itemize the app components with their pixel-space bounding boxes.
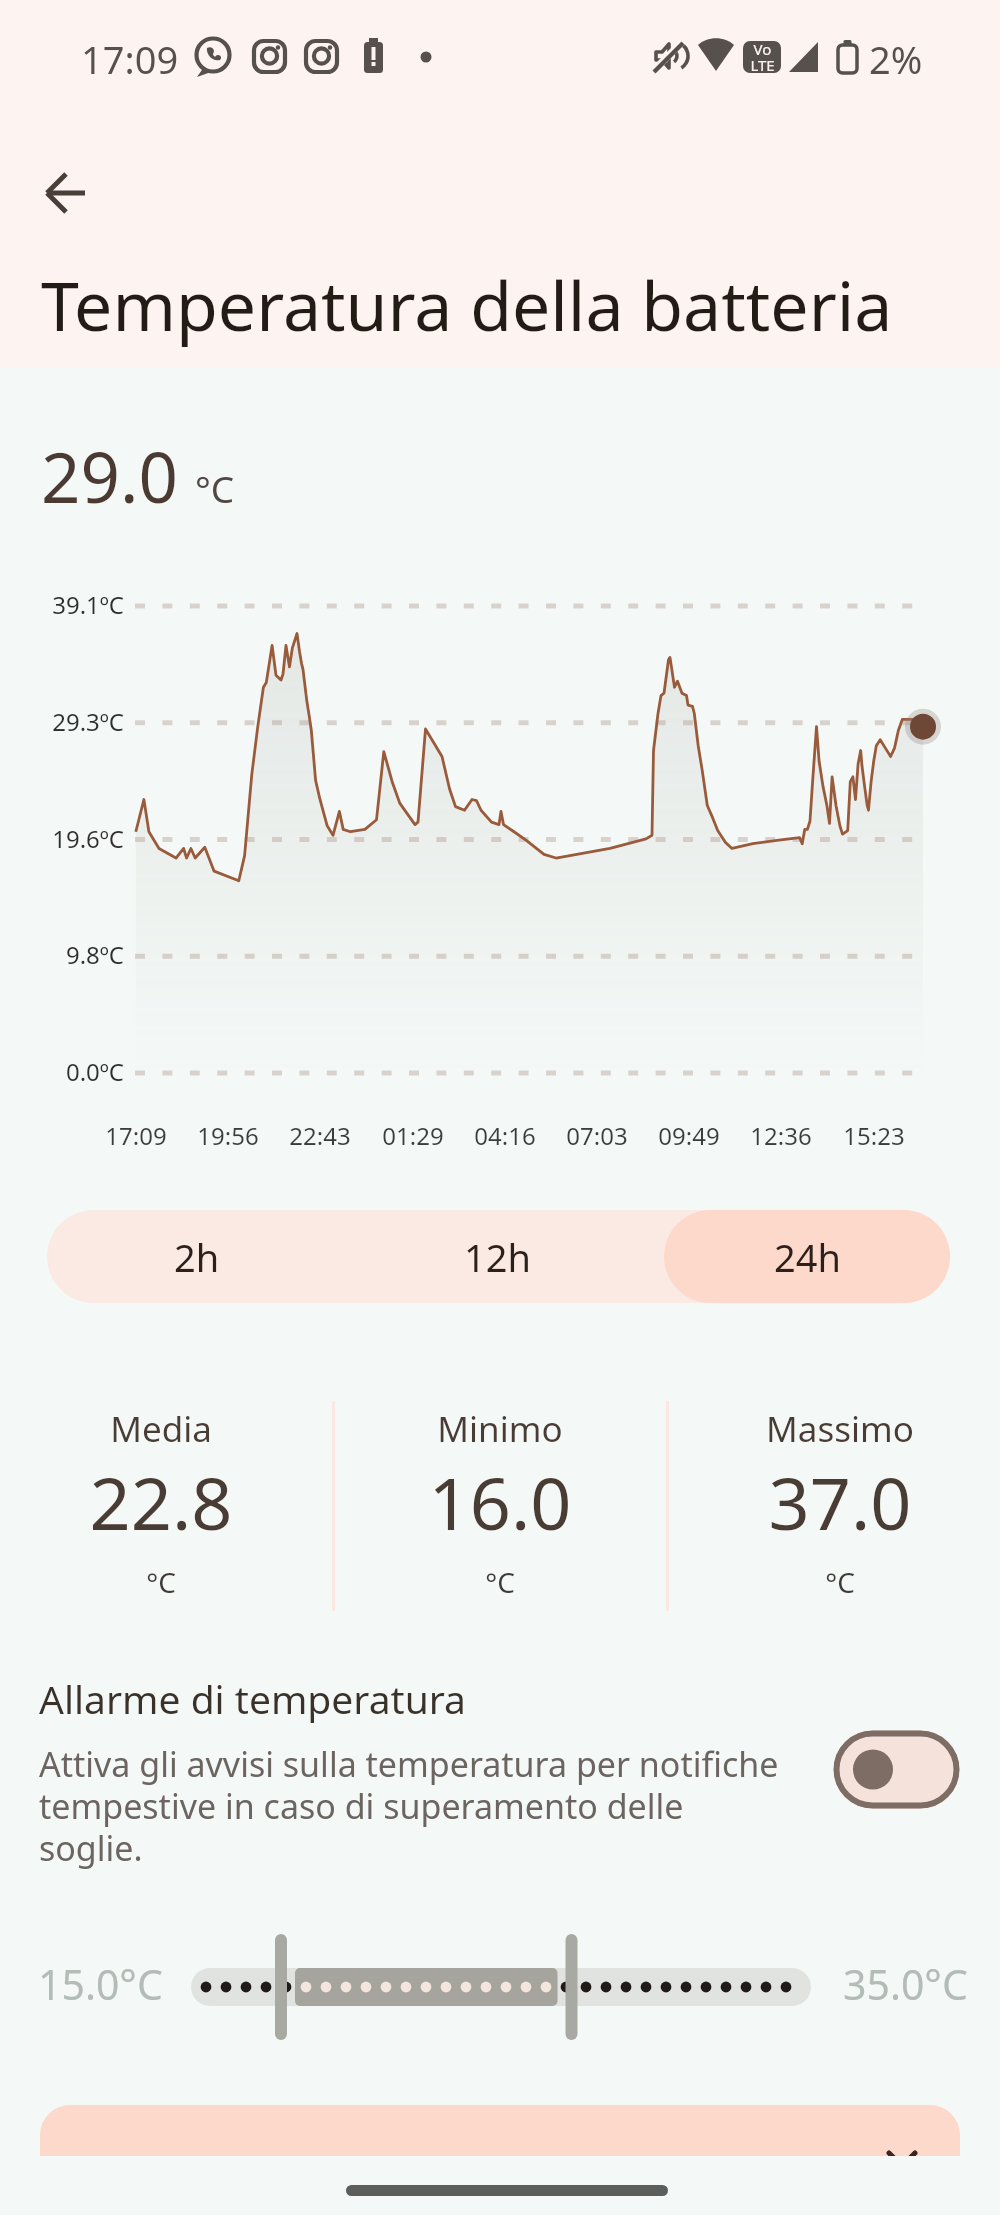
button[interactable]: Massimo: [690, 1405, 990, 1601]
staticText: 15.0°C: [38, 1956, 163, 2012]
button[interactable]: 2h: [47, 1210, 347, 1303]
staticText: °C: [11, 1563, 311, 1601]
staticText: 0.0ºC: [18, 1055, 124, 1088]
staticText: 37.0: [690, 1453, 990, 1551]
staticText: 09:49: [629, 1119, 749, 1152]
staticText: °C: [195, 463, 235, 513]
staticText: Attiva gli avvisi sulla temperatura per …: [39, 1741, 789, 1871]
button[interactable]: Media: [11, 1405, 311, 1601]
staticText: Minimo: [350, 1405, 650, 1453]
button[interactable]: Minimo: [350, 1405, 650, 1601]
button[interactable]: 12h: [347, 1210, 647, 1303]
staticText: 17:09: [76, 1119, 196, 1152]
staticText: 29.0: [41, 429, 178, 523]
staticText: °C: [350, 1563, 650, 1601]
staticText: 19:56: [168, 1119, 288, 1152]
staticText: 17:09: [81, 33, 179, 85]
staticText: 22.8: [11, 1453, 311, 1551]
button[interactable]: 24h: [664, 1210, 950, 1303]
staticText: 04:16: [445, 1119, 565, 1152]
staticText: °C: [690, 1563, 990, 1601]
staticText: Media: [11, 1405, 311, 1453]
staticText: 39.1ºC: [18, 588, 124, 621]
staticText: 12:36: [721, 1119, 841, 1152]
staticText: Allarme di temperatura: [39, 1672, 466, 1725]
staticText: 24h: [774, 1231, 841, 1283]
staticText: 16.0: [350, 1453, 650, 1551]
staticText: 22:43: [260, 1119, 380, 1152]
staticText: 29.3ºC: [18, 705, 124, 738]
staticText: Vo LTE: [744, 39, 781, 75]
staticText: 9.8ºC: [18, 938, 124, 971]
staticText: 01:29: [353, 1119, 473, 1152]
staticText: Temperatura della batteria: [41, 258, 893, 351]
button[interactable]: Indietro: [29, 157, 101, 229]
staticText: 35.0°C: [843, 1956, 968, 2012]
staticText: Massimo: [690, 1405, 990, 1453]
button[interactable]: Altre impostazioni: [40, 2105, 960, 2156]
staticText: 19.6ºC: [18, 822, 124, 855]
button[interactable]: Attiva allarme temperatura: [833, 1730, 960, 1809]
staticText: 07:03: [537, 1119, 657, 1152]
staticText: 2%: [869, 33, 923, 85]
staticText: 15:23: [814, 1119, 934, 1152]
staticText: 2h: [174, 1231, 220, 1283]
staticText: 12h: [464, 1231, 531, 1283]
button[interactable]: Intervallo soglie temperatura: [186, 1934, 816, 2040]
